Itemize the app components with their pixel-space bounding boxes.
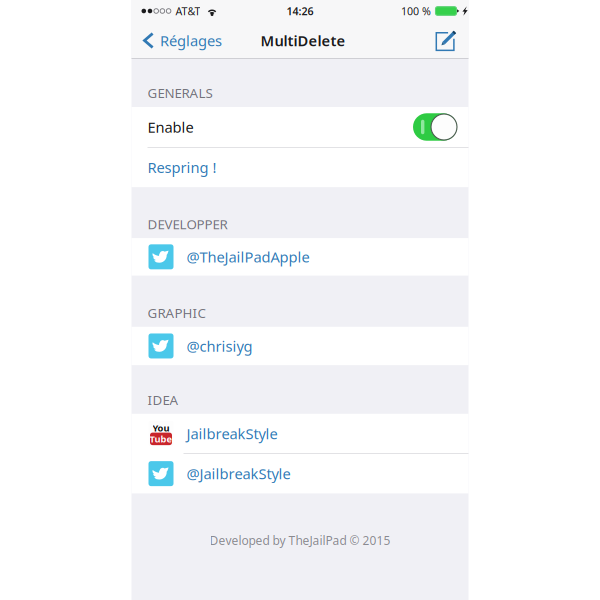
staticText: GENERALS (147, 84, 212, 102)
staticText: 100 % (401, 4, 431, 18)
button[interactable]: Respring ! (131, 148, 468, 187)
button[interactable]: You (131, 414, 468, 453)
staticText: Respring ! (147, 158, 216, 177)
staticText: Réglages (160, 31, 222, 50)
staticText: JailbreakStyle (186, 424, 277, 443)
button[interactable]: Enable (131, 107, 468, 147)
staticText: @TheJailPadApple (186, 247, 309, 267)
staticText: MultiDelete (260, 31, 345, 50)
staticText: Developed by TheJailPad © 2015 (209, 532, 390, 548)
staticText: IDEA (147, 391, 178, 409)
staticText: Enable (147, 117, 193, 137)
staticText: 14:26 (286, 4, 313, 18)
button[interactable]: @TheJailPadApple (131, 238, 468, 276)
staticText: @JailbreakStyle (186, 464, 290, 483)
staticText: DEVELOPPER (147, 215, 227, 233)
staticText: AT&T (175, 4, 200, 18)
button[interactable]: @chrisiyg (131, 327, 468, 365)
button[interactable]: Compose (425, 22, 468, 59)
button[interactable]: Réglages (131, 22, 232, 59)
button[interactable]: @JailbreakStyle (131, 454, 468, 493)
staticText: GRAPHIC (147, 304, 205, 322)
staticText: @chrisiyg (186, 336, 252, 356)
